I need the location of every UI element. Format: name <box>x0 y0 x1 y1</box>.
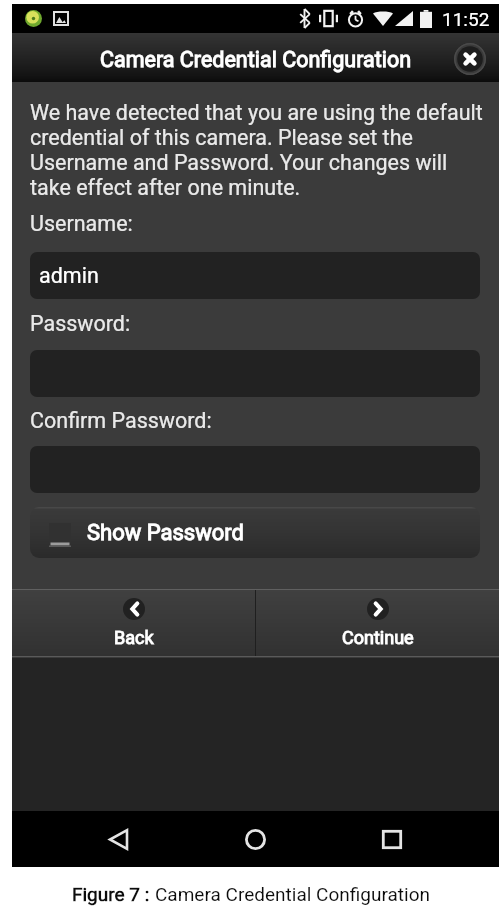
button[interactable]: admin <box>30 252 480 299</box>
staticText: Show Password <box>87 520 244 546</box>
button[interactable]: Recent apps <box>367 815 416 864</box>
staticText: Password: <box>30 311 131 336</box>
staticText: Confirm Password: <box>30 408 212 433</box>
button[interactable]: Back <box>94 815 143 864</box>
staticText: Continue <box>342 627 414 648</box>
staticText: Back <box>114 627 154 648</box>
staticText: Figure 7 : <box>72 883 155 905</box>
staticText: 11:52 <box>442 8 490 30</box>
staticText: We have detected that you are using the … <box>30 100 490 200</box>
button[interactable]: Close <box>454 43 486 75</box>
staticText: admin <box>39 263 99 288</box>
button[interactable]: Back <box>12 590 255 656</box>
staticText: Camera Credential Configuration <box>155 883 430 905</box>
button[interactable]: Continue <box>256 590 499 656</box>
button[interactable]: Show Password <box>30 507 480 558</box>
staticText: Camera Credential Configuration <box>100 47 412 72</box>
button[interactable]: Home <box>231 815 280 864</box>
staticText: Username: <box>30 211 133 236</box>
